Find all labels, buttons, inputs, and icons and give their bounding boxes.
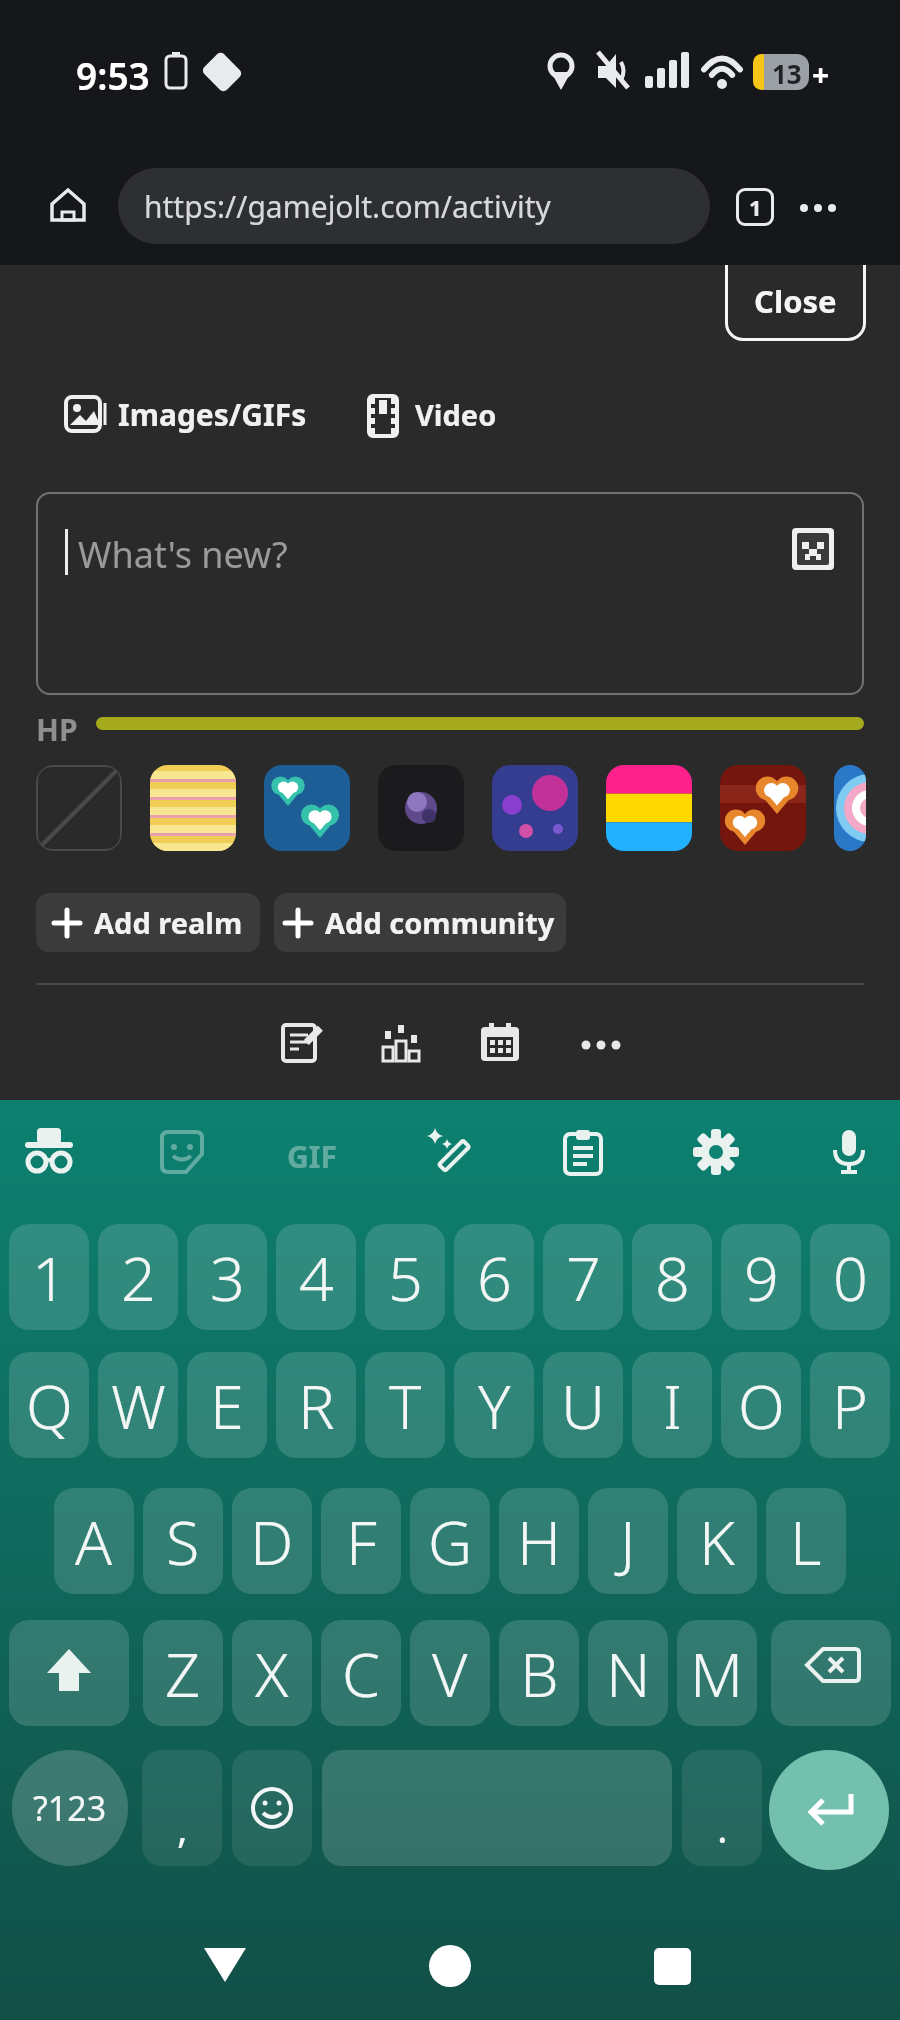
button[interactable]: E — [187, 1352, 267, 1458]
button[interactable]: Close — [725, 265, 866, 341]
button[interactable] — [834, 765, 866, 851]
button[interactable] — [798, 188, 838, 228]
button[interactable] — [771, 1620, 891, 1726]
button[interactable]: Add realm — [36, 893, 260, 952]
button[interactable]: ?123 — [12, 1750, 128, 1866]
staticText: Z — [165, 1632, 201, 1715]
button[interactable]: O — [721, 1352, 801, 1458]
button[interactable] — [827, 1130, 871, 1174]
button[interactable]: What's new? — [36, 492, 864, 695]
button[interactable]: R — [276, 1352, 356, 1458]
button[interactable] — [492, 765, 578, 851]
button[interactable]: https://gamejolt.com/activity — [118, 168, 710, 244]
button[interactable]: 9 — [721, 1224, 801, 1330]
button[interactable] — [415, 1962, 485, 2020]
staticText: 8 — [655, 1236, 690, 1319]
button[interactable]: , — [142, 1750, 222, 1866]
button[interactable] — [150, 765, 236, 851]
staticText: V — [432, 1632, 468, 1715]
staticText: H — [517, 1500, 562, 1583]
button[interactable] — [693, 1129, 739, 1175]
button[interactable]: C — [321, 1620, 401, 1726]
button[interactable]: N — [588, 1620, 668, 1726]
button[interactable]: P — [810, 1352, 890, 1458]
staticText: 0 — [833, 1236, 868, 1319]
button[interactable]: 5 — [365, 1224, 445, 1330]
staticText: 7 — [566, 1236, 601, 1319]
staticText: D — [250, 1500, 294, 1583]
button[interactable] — [425, 1128, 473, 1176]
staticText: A — [75, 1500, 113, 1583]
staticText: O — [738, 1364, 785, 1447]
button[interactable] — [606, 765, 692, 851]
button[interactable]: Q — [9, 1352, 89, 1458]
button[interactable] — [322, 1750, 672, 1866]
staticText: , — [177, 1800, 188, 1854]
button[interactable]: 3 — [187, 1224, 267, 1330]
button[interactable] — [561, 1130, 605, 1174]
button[interactable] — [232, 1750, 312, 1866]
button[interactable] — [66, 393, 108, 435]
button[interactable]: 8 — [632, 1224, 712, 1330]
staticText: Images/GIFs — [118, 394, 307, 435]
button[interactable]: 1 — [736, 188, 774, 226]
button[interactable]: U — [543, 1352, 623, 1458]
button[interactable] — [264, 765, 350, 851]
button[interactable] — [190, 1962, 260, 2020]
button[interactable] — [23, 1126, 75, 1178]
button[interactable]: 1 — [9, 1224, 89, 1330]
button[interactable]: Y — [454, 1352, 534, 1458]
button[interactable]: GIF — [287, 1136, 337, 1177]
button[interactable] — [160, 1130, 204, 1174]
button[interactable] — [378, 765, 464, 851]
staticText: 3 — [210, 1236, 245, 1319]
button[interactable]: F — [321, 1488, 401, 1594]
button[interactable]: 4 — [276, 1224, 356, 1330]
button[interactable]: K — [677, 1488, 757, 1594]
button[interactable]: J — [588, 1488, 668, 1594]
button[interactable]: 2 — [98, 1224, 178, 1330]
button[interactable] — [381, 1023, 421, 1063]
button[interactable] — [367, 396, 403, 432]
button[interactable]: D — [232, 1488, 312, 1594]
button[interactable]: 0 — [810, 1224, 890, 1330]
button[interactable]: X — [232, 1620, 312, 1726]
button[interactable]: B — [499, 1620, 579, 1726]
staticText: X — [255, 1632, 289, 1715]
button[interactable]: Z — [143, 1620, 223, 1726]
button[interactable] — [581, 1023, 621, 1063]
button[interactable]: A — [54, 1488, 134, 1594]
button[interactable]: I — [632, 1352, 712, 1458]
staticText: S — [166, 1500, 200, 1583]
button[interactable]: S — [143, 1488, 223, 1594]
button[interactable] — [637, 1962, 707, 2020]
button[interactable]: T — [365, 1352, 445, 1458]
staticText: 9 — [744, 1236, 779, 1319]
staticText: I — [663, 1364, 682, 1447]
button[interactable] — [36, 765, 122, 851]
button[interactable] — [481, 1023, 521, 1063]
button[interactable]: Add community — [274, 893, 566, 952]
staticText: 6 — [477, 1236, 512, 1319]
button[interactable] — [9, 1620, 129, 1726]
button[interactable]: . — [682, 1750, 762, 1866]
staticText: R — [298, 1364, 335, 1447]
button[interactable] — [720, 765, 806, 851]
button[interactable]: W — [98, 1352, 178, 1458]
button[interactable] — [48, 186, 88, 226]
button[interactable]: M — [677, 1620, 757, 1726]
staticText: + — [812, 54, 830, 95]
staticText: N — [606, 1632, 651, 1715]
button[interactable] — [769, 1750, 889, 1870]
staticText: B — [520, 1632, 559, 1715]
button[interactable]: V — [410, 1620, 490, 1726]
staticText: E — [210, 1364, 244, 1447]
button[interactable]: 7 — [543, 1224, 623, 1330]
staticText: Y — [478, 1364, 511, 1447]
button[interactable]: 6 — [454, 1224, 534, 1330]
button[interactable]: H — [499, 1488, 579, 1594]
button[interactable]: L — [766, 1488, 846, 1594]
staticText: What's new? — [78, 530, 288, 579]
button[interactable] — [283, 1023, 323, 1063]
button[interactable]: G — [410, 1488, 490, 1594]
